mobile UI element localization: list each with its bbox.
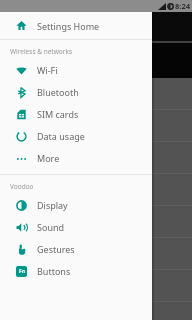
button[interactable]: Wi-Fi — [0, 59, 152, 81]
staticText: Voodoo — [10, 182, 34, 191]
staticText: Buttons — [37, 265, 71, 277]
staticText: 8:24 — [175, 1, 190, 11]
button[interactable]: Bluetooth — [0, 81, 152, 103]
staticText: Data usage — [37, 130, 85, 142]
staticText: SIM cards — [37, 108, 79, 120]
button[interactable]: Data usage — [0, 125, 152, 147]
button[interactable]: Gestures — [0, 238, 152, 260]
staticText: Display — [37, 199, 68, 211]
button[interactable]: Display — [0, 194, 152, 216]
button[interactable]: Sound — [0, 216, 152, 238]
staticText: Wireless & networks — [10, 47, 72, 56]
staticText: Wi-Fi — [37, 64, 58, 76]
button[interactable]: More — [0, 147, 152, 169]
staticText: Fn — [19, 268, 25, 275]
button[interactable]: Settings Home — [0, 12, 152, 39]
staticText: Bluetooth — [37, 86, 79, 98]
button[interactable]: SIM cards — [0, 103, 152, 125]
button[interactable]: Fn — [0, 260, 152, 282]
staticText: Gestures — [37, 243, 75, 255]
staticText: Settings Home — [37, 20, 100, 32]
staticText: Sound — [37, 221, 65, 233]
staticText: More — [37, 152, 60, 164]
